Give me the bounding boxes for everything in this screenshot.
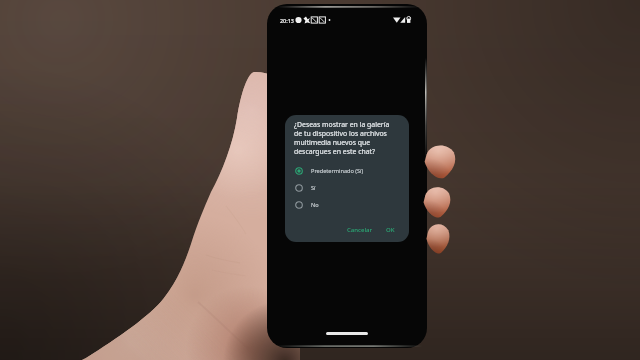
staticText: Cancelar <box>347 226 372 234</box>
staticText: No <box>311 201 319 209</box>
button[interactable]: Cancelar <box>344 224 375 236</box>
staticText: 20:13 <box>280 17 294 24</box>
button[interactable]: Sí <box>294 179 316 196</box>
button[interactable]: Predeterminado (Sí) <box>294 162 364 179</box>
staticText: Sí <box>311 184 316 192</box>
staticText: ¿Deseas mostrar en la galería de tu disp… <box>294 120 390 156</box>
button[interactable]: No <box>294 196 319 213</box>
staticText: OK <box>386 226 395 234</box>
button[interactable]: OK <box>383 224 398 236</box>
staticText: Predeterminado (Sí) <box>311 167 364 175</box>
